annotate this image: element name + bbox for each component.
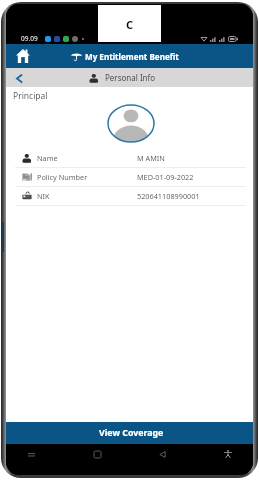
button[interactable]: View Coverage [6, 422, 253, 444]
button[interactable]: Back [155, 447, 169, 461]
button[interactable]: Accessibility [221, 447, 235, 461]
staticText: Personal Info [105, 72, 156, 83]
staticText: View Coverage [99, 427, 164, 439]
button[interactable]: Home [90, 447, 104, 461]
button[interactable]: Back [11, 70, 27, 86]
button[interactable]: NIK [6, 187, 253, 205]
button[interactable]: Name [6, 149, 253, 167]
staticText: My Entitlement Benefit [85, 51, 179, 62]
staticText: C [126, 17, 134, 32]
button[interactable]: Recents [24, 447, 38, 461]
button[interactable]: Home [14, 47, 32, 65]
staticText: NIK [37, 191, 50, 201]
staticText: 520641108990001 [137, 191, 200, 201]
staticText: Principal [13, 90, 48, 102]
staticText: M AMIN [137, 153, 165, 163]
staticText: Policy Number [37, 172, 88, 182]
staticText: Name [37, 153, 58, 163]
staticText: 09.09 [21, 34, 38, 43]
staticText: MED-01-09-2022 [137, 172, 194, 182]
button[interactable]: Policy Number [6, 168, 253, 186]
